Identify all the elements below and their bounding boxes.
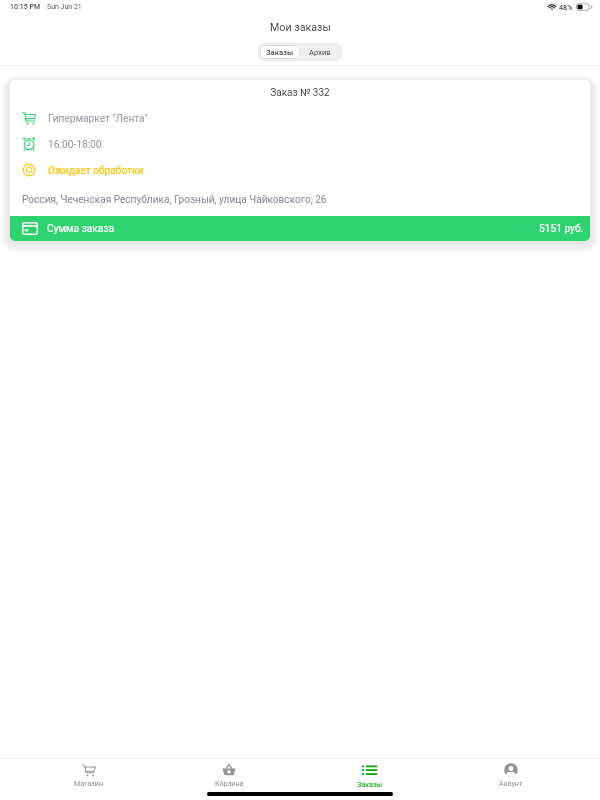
staticText: Гипермаркет "Лента" bbox=[48, 113, 148, 125]
staticText: Sun Jun 21 bbox=[47, 3, 82, 11]
staticText: Корзина bbox=[215, 779, 244, 787]
staticText: 10:15 PM bbox=[10, 3, 41, 11]
staticText: 16:00-18:00 bbox=[48, 139, 102, 151]
button[interactable]: Магазин bbox=[19, 759, 159, 789]
staticText: 48% bbox=[559, 3, 573, 11]
staticText: Акаунт bbox=[499, 779, 523, 787]
staticText: Заказы bbox=[357, 780, 383, 788]
button[interactable]: Заказы bbox=[260, 45, 300, 59]
staticText: Мои заказы bbox=[270, 21, 331, 34]
staticText: Сумма заказа bbox=[47, 223, 115, 235]
button[interactable]: Корзина bbox=[159, 759, 299, 789]
staticText: Архив bbox=[309, 48, 331, 57]
button[interactable]: Заказы bbox=[299, 759, 440, 789]
button[interactable]: Акаунт bbox=[440, 759, 581, 789]
staticText: 5151 руб. bbox=[539, 223, 584, 235]
staticText: Магазин bbox=[74, 779, 104, 787]
staticText: Ожидает обработки bbox=[48, 165, 144, 177]
staticText: Заказы bbox=[266, 48, 294, 57]
button[interactable]: Сумма заказа bbox=[10, 216, 590, 241]
button[interactable]: Архив bbox=[300, 45, 340, 59]
staticText: Россия, Чеченская Республика, Грозный, у… bbox=[22, 194, 327, 206]
button[interactable]: Заказ № 332 bbox=[10, 80, 590, 241]
staticText: Заказ № 332 bbox=[270, 87, 330, 99]
